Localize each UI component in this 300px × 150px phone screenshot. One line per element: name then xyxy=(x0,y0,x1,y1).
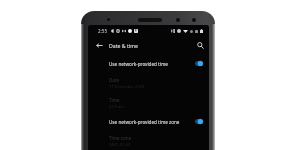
button[interactable]: Use network-provided time zone xyxy=(88,112,209,131)
staticText: Use network-provided time xyxy=(109,61,168,67)
staticText: Date xyxy=(109,77,120,83)
button[interactable]: Use network-provided time xyxy=(88,54,209,73)
button[interactable]: Search xyxy=(195,40,206,51)
staticText: Time zone xyxy=(109,135,132,141)
staticText: 17 December 2020 xyxy=(109,84,145,89)
staticText: 2:55 xyxy=(98,28,108,34)
staticText: Time xyxy=(109,97,120,103)
staticText: GMT+05:30 xyxy=(109,142,131,147)
staticText: 2:55 am xyxy=(109,104,124,109)
staticText: Use network-provided time zone xyxy=(109,119,180,125)
staticText: Date & time xyxy=(109,42,138,49)
button[interactable]: Time zone xyxy=(88,131,209,150)
button[interactable]: Back xyxy=(94,40,105,51)
